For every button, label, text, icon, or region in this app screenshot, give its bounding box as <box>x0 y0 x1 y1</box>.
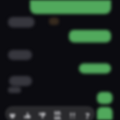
button[interactable]: Dislike <box>35 106 50 120</box>
button[interactable]: Love <box>5 106 20 120</box>
staticText: ? <box>85 110 90 120</box>
button[interactable]: Question <box>80 106 95 120</box>
button[interactable]: Haha <box>50 106 65 120</box>
button[interactable]: Emphasize <box>65 106 80 120</box>
staticText: HA HA <box>54 110 61 120</box>
button[interactable]: Like <box>20 106 35 120</box>
